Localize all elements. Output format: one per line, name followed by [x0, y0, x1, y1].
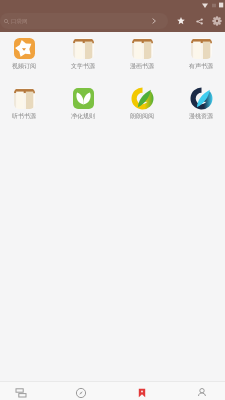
button[interactable]: 净化规则	[62, 86, 104, 136]
staticText: 视频订阅	[12, 62, 36, 70]
button[interactable]: 有声书源	[180, 36, 222, 86]
button[interactable]: 听书书源	[3, 86, 45, 136]
button[interactable]: 文学书源	[62, 36, 104, 86]
staticText: 文学书源	[71, 62, 95, 70]
button[interactable]: 视频订阅	[3, 36, 45, 86]
button[interactable]: 漫画书源	[121, 36, 163, 86]
staticText: 朗朗阅阅	[130, 112, 154, 120]
button[interactable]: Profile	[186, 385, 217, 400]
button[interactable]: Favorites	[171, 12, 190, 30]
button[interactable]: 口袋网	[0, 13, 168, 29]
button[interactable]: Bookshelf	[5, 385, 36, 400]
button[interactable]: Bookmarks	[126, 385, 157, 400]
button[interactable]: 朗朗阅阅	[121, 86, 163, 136]
staticText: 口袋网	[11, 18, 28, 25]
staticText: 净化规则	[71, 112, 95, 120]
button[interactable]: Settings	[209, 12, 225, 30]
staticText: 有声书源	[189, 62, 213, 70]
staticText: 漫桃资源	[189, 112, 213, 120]
staticText: 漫画书源	[130, 62, 154, 70]
staticText: 听书书源	[12, 112, 36, 120]
button[interactable]: 漫桃资源	[180, 86, 222, 136]
button[interactable]: Share	[190, 12, 209, 30]
button[interactable]: Discover	[65, 385, 96, 400]
